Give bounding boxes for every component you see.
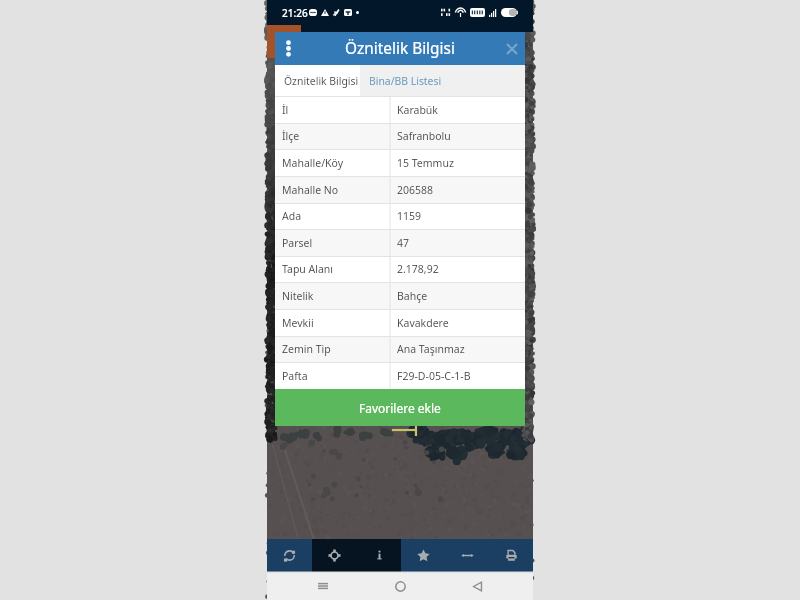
staticText: 21:26 — [282, 6, 308, 20]
button[interactable]: Info — [357, 539, 401, 572]
staticText: İlçe — [282, 129, 390, 143]
staticText: 47 — [397, 236, 410, 250]
staticText: 206588 — [397, 183, 434, 197]
staticText: Öznitelik Bilgisi — [345, 38, 455, 59]
button[interactable]: Bina/BB Listesi — [360, 65, 525, 96]
staticText: Karabük — [397, 103, 438, 117]
button[interactable]: Recents — [300, 572, 346, 600]
staticText: Parsel — [282, 236, 390, 250]
staticText: Favorilere ekle — [359, 400, 441, 416]
button[interactable]: Home — [377, 572, 423, 600]
staticText: Pafta — [282, 369, 390, 383]
staticText: Mahalle/Köy — [282, 156, 390, 170]
button[interactable]: Favorites — [401, 539, 445, 572]
button[interactable]: Close — [499, 32, 525, 65]
staticText: F29-D-05-C-1-B — [397, 369, 471, 383]
button[interactable]: Print — [489, 539, 533, 572]
staticText: Nitelik — [282, 289, 390, 303]
button[interactable]: Favorilere ekle — [275, 389, 525, 426]
staticText: Ana Taşınmaz — [397, 342, 465, 356]
button[interactable]: Öznitelik Bilgisi — [275, 65, 360, 96]
staticText: İl — [282, 103, 390, 117]
staticText: Bina/BB Listesi — [369, 74, 442, 88]
button[interactable]: More options — [275, 32, 301, 65]
staticText: Kavakdere — [397, 316, 449, 330]
staticText: 1159 — [397, 209, 422, 223]
button[interactable]: Back — [454, 572, 500, 600]
staticText: Ada — [282, 209, 390, 223]
button[interactable]: Refresh — [267, 539, 312, 572]
staticText: Safranbolu — [397, 129, 451, 143]
staticText: Mevkii — [282, 316, 390, 330]
staticText: Öznitelik Bilgisi — [284, 74, 359, 88]
staticText: Mahalle No — [282, 183, 390, 197]
button[interactable]: Locate — [312, 539, 357, 572]
staticText: 2.178,92 — [397, 262, 439, 276]
staticText: 15 Temmuz — [397, 156, 454, 170]
button[interactable]: Measure — [445, 539, 489, 572]
staticText: Bahçe — [397, 289, 428, 303]
staticText: Zemin Tip — [282, 342, 390, 356]
staticText: Tapu Alanı — [282, 262, 390, 276]
